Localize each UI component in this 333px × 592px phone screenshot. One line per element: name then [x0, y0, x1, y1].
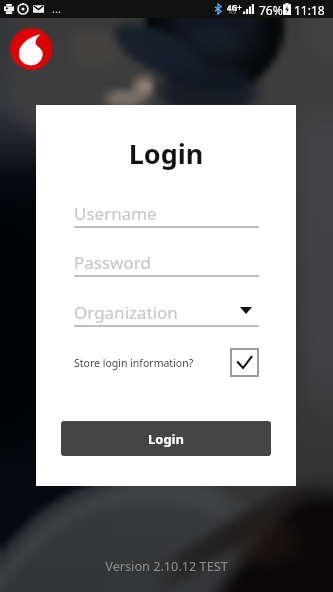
- staticText: Store login information?: [74, 356, 194, 370]
- staticText: 11:18: [294, 2, 325, 18]
- staticText: Login: [36, 135, 296, 172]
- button[interactable]: Username: [74, 201, 259, 228]
- staticText: Password: [74, 251, 151, 274]
- other: Vodafone: [10, 28, 52, 70]
- staticText: Username: [74, 202, 157, 225]
- staticText: 4G+: [227, 2, 242, 13]
- staticText: Version 2.10.12 TEST: [105, 557, 228, 574]
- staticText: Login: [148, 430, 184, 448]
- button[interactable]: Password: [74, 250, 259, 277]
- staticText: 76%: [259, 2, 283, 18]
- staticText: 4.9: [229, 9, 237, 16]
- button[interactable]: Organization: [74, 300, 259, 327]
- staticText: Organization: [74, 301, 178, 324]
- button[interactable]: Store login information?: [74, 348, 259, 377]
- button[interactable]: Login: [61, 421, 271, 456]
- staticText: ...: [52, 1, 61, 16]
